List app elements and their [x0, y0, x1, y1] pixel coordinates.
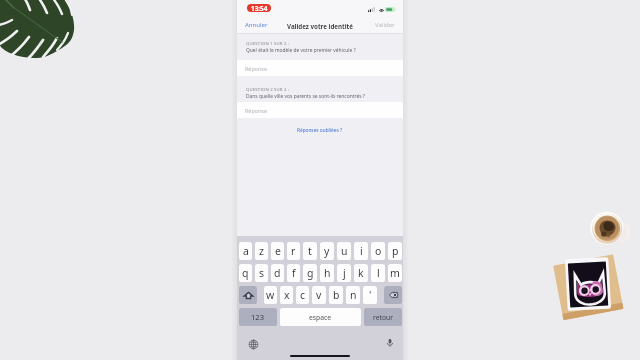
staticText: 123 [251, 312, 265, 322]
staticText: h [324, 266, 331, 280]
button[interactable]: n [346, 286, 360, 304]
staticText: Réponse [245, 107, 267, 114]
button[interactable]: Réponse [237, 102, 403, 118]
button[interactable]: Réponses oubliées ? [237, 125, 403, 135]
button[interactable]: l [371, 264, 385, 282]
staticText: a [243, 244, 249, 258]
staticText: v [316, 288, 322, 302]
button[interactable]: h [320, 264, 334, 282]
staticText: Dans quelle ville vos parents se sont-il… [246, 93, 365, 100]
button[interactable]: m [388, 264, 402, 282]
button[interactable]: p [388, 242, 402, 260]
staticText: QUESTION 1 SUR 2 : [246, 40, 290, 46]
staticText: y [324, 244, 330, 258]
button[interactable]: d [271, 264, 284, 282]
staticText: Quel était le modèle de votre premier vé… [246, 47, 356, 54]
button[interactable]: 123 [239, 308, 277, 326]
staticText: i [360, 244, 363, 258]
staticText: k [358, 266, 364, 280]
staticText: s [259, 266, 265, 280]
staticText: espace [309, 313, 332, 322]
staticText: f [292, 266, 296, 280]
staticText: Valider [375, 21, 395, 29]
staticText: u [341, 244, 348, 258]
staticText: QUESTION 2 SUR 2 : [246, 86, 290, 92]
button[interactable]: t [303, 242, 317, 260]
staticText: j [343, 266, 346, 280]
staticText: n [350, 288, 357, 302]
button[interactable]: z [255, 242, 268, 260]
staticText: c [300, 288, 306, 302]
staticText: m [390, 266, 400, 280]
button[interactable]: Backspace [384, 286, 402, 304]
button[interactable]: b [329, 286, 343, 304]
button[interactable]: k [354, 264, 368, 282]
button[interactable]: c [296, 286, 309, 304]
staticText: o [375, 244, 382, 258]
staticText: r [291, 244, 296, 258]
staticText: Annuler [245, 21, 268, 29]
button[interactable]: retour [364, 308, 402, 326]
button[interactable]: i [354, 242, 368, 260]
button[interactable]: Change keyboard language [248, 339, 259, 350]
button[interactable]: ' [363, 286, 377, 304]
staticText: l [377, 266, 380, 280]
staticText: e [275, 244, 281, 258]
staticText: ' [369, 288, 372, 302]
button[interactable]: x [280, 286, 293, 304]
button[interactable]: r [287, 242, 300, 260]
staticText: b [333, 288, 340, 302]
staticText: z [259, 244, 264, 258]
staticText: Réponses oubliées ? [297, 127, 343, 133]
button[interactable]: Shift [239, 286, 257, 304]
button[interactable]: u [337, 242, 351, 260]
button[interactable]: w [264, 286, 277, 304]
button[interactable]: Valider [373, 19, 397, 31]
button[interactable]: Annuler [243, 19, 270, 31]
button[interactable]: g [303, 264, 317, 282]
staticText: t [308, 244, 312, 258]
staticText: p [392, 244, 399, 258]
button[interactable]: Réponse [237, 60, 403, 76]
staticText: q [242, 266, 249, 280]
staticText: retour [373, 313, 394, 322]
button[interactable]: Dictate [385, 338, 395, 348]
button[interactable]: j [337, 264, 351, 282]
button[interactable]: espace [280, 308, 361, 326]
button[interactable]: e [271, 242, 284, 260]
staticText: Réponse [245, 65, 267, 72]
button[interactable]: q [239, 264, 252, 282]
button[interactable]: f [287, 264, 300, 282]
staticText: 13:54 [251, 4, 268, 12]
button[interactable]: y [320, 242, 334, 260]
button[interactable]: a [239, 242, 252, 260]
staticText: x [284, 288, 290, 302]
staticText: Validez votre identité [287, 22, 353, 30]
staticText: w [266, 288, 275, 302]
button[interactable]: o [371, 242, 385, 260]
button[interactable]: s [255, 264, 268, 282]
staticText: d [274, 266, 281, 280]
staticText: g [307, 266, 314, 280]
button[interactable]: v [312, 286, 326, 304]
